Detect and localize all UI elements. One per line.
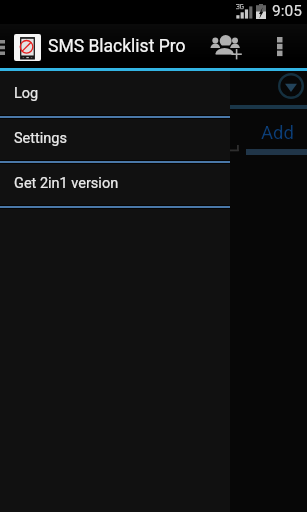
button[interactable]: Settings bbox=[0, 119, 230, 160]
staticText: Settings bbox=[14, 130, 67, 147]
staticText: Add bbox=[261, 122, 294, 144]
staticText: Get 2in1 version bbox=[14, 175, 119, 192]
button[interactable]: Log bbox=[0, 74, 230, 115]
staticText: Log bbox=[14, 85, 39, 102]
button[interactable]: More options bbox=[262, 24, 307, 71]
button[interactable]: Get 2in1 version bbox=[0, 164, 230, 205]
button[interactable]: Add contacts bbox=[202, 24, 248, 71]
staticText: 9:05 bbox=[272, 2, 302, 20]
staticText: SMS Blacklist Pro bbox=[48, 36, 186, 57]
button[interactable]: Open navigation drawer bbox=[0, 24, 8, 71]
button[interactable]: Show options bbox=[278, 73, 304, 99]
